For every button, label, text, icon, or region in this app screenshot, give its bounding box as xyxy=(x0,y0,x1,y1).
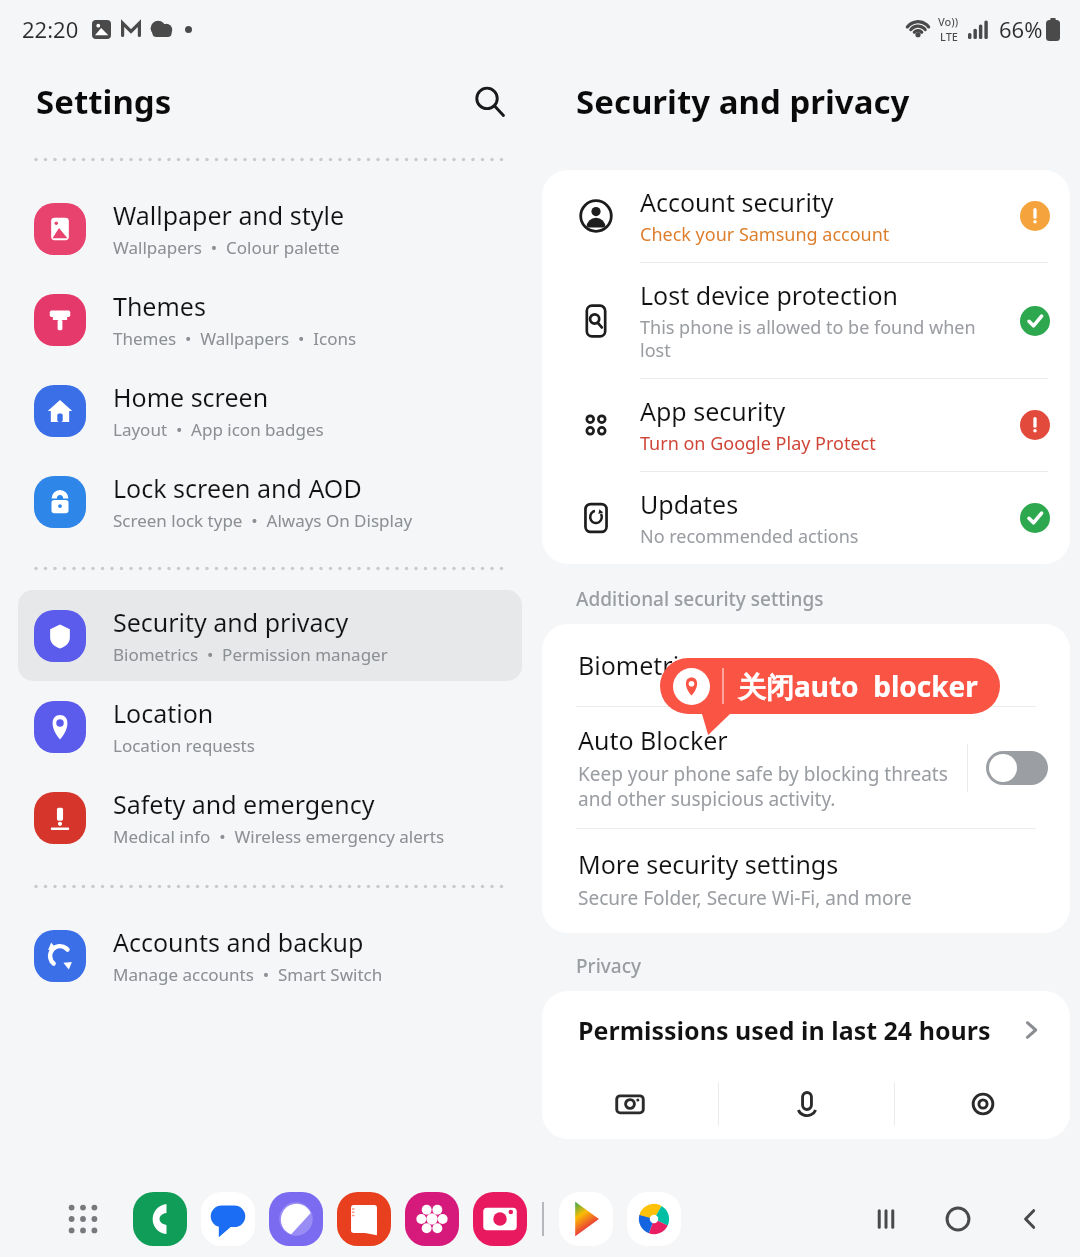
button[interactable]: Recents xyxy=(850,1183,922,1255)
button[interactable]: Themes xyxy=(18,274,522,365)
staticText: More security settings xyxy=(578,847,839,881)
staticText: Medical info • Wireless emergency alerts xyxy=(113,825,445,848)
button[interactable]: Lock screen and AOD xyxy=(18,456,522,547)
button[interactable]: Apps xyxy=(60,1196,106,1242)
staticText: Vo)) xyxy=(938,14,959,29)
staticText: Lost device protection xyxy=(640,278,898,312)
button[interactable]: Accounts and backup xyxy=(18,910,522,1001)
staticText: Biometrics • Permission manager xyxy=(113,643,388,666)
button[interactable]: Permissions used in last 24 hours xyxy=(542,991,1070,1069)
button[interactable]: Camera xyxy=(542,1069,718,1139)
staticText: Home screen xyxy=(113,380,269,414)
staticText: Security and privacy xyxy=(576,79,910,124)
button[interactable]: Auto Blocker toggle xyxy=(986,751,1048,785)
staticText: Layout • App icon badges xyxy=(113,418,324,441)
button[interactable]: Lost device protection xyxy=(542,263,1070,379)
staticText: Additional security settings xyxy=(576,586,824,612)
staticText: Turn on Google Play Protect xyxy=(640,431,876,456)
staticText: This phone is allowed to be found when l… xyxy=(640,315,1010,363)
button[interactable]: Internet xyxy=(269,1192,323,1246)
staticText: Updates xyxy=(640,487,739,521)
button[interactable]: Location xyxy=(18,681,522,772)
staticText: App security xyxy=(640,394,786,428)
button[interactable]: Auto Blocker xyxy=(542,707,1070,828)
staticText: 66% xyxy=(999,14,1043,44)
button[interactable]: Safety and emergency xyxy=(18,772,522,863)
button[interactable]: Microphone xyxy=(719,1069,894,1139)
button[interactable]: Back xyxy=(994,1183,1066,1255)
button[interactable]: Play Store xyxy=(559,1192,613,1246)
staticText: Privacy xyxy=(576,953,641,979)
button[interactable]: Phone xyxy=(133,1192,187,1246)
staticText: Themes • Wallpapers • Icons xyxy=(113,327,357,350)
staticText: 关闭auto blocker xyxy=(738,667,978,705)
staticText: Wallpapers • Colour palette xyxy=(113,236,340,259)
button[interactable]: Search xyxy=(464,76,514,126)
button[interactable]: Wallpaper and style xyxy=(18,183,522,274)
staticText: Accounts and backup xyxy=(113,925,364,959)
staticText: Security and privacy xyxy=(113,605,349,639)
button[interactable]: More security settings xyxy=(542,829,1070,933)
button[interactable]: Galaxy Store xyxy=(627,1192,681,1246)
staticText: Location requests xyxy=(113,734,255,757)
staticText: Auto Blocker xyxy=(578,723,728,757)
staticText: Wallpaper and style xyxy=(113,198,345,232)
staticText: Settings xyxy=(36,79,172,124)
button[interactable]: Gallery xyxy=(405,1192,459,1246)
button[interactable]: Home screen xyxy=(18,365,522,456)
button[interactable]: Location xyxy=(895,1069,1070,1139)
button[interactable]: Home xyxy=(922,1183,994,1255)
staticText: 22:20 xyxy=(22,14,79,44)
button[interactable]: Account security xyxy=(542,170,1070,263)
button[interactable]: Updates xyxy=(542,472,1070,564)
staticText: Secure Folder, Secure Wi-Fi, and more xyxy=(578,885,912,911)
button[interactable]: Biometrics xyxy=(542,624,1070,706)
staticText: Biometrics xyxy=(578,648,704,682)
staticText: Permissions used in last 24 hours xyxy=(578,1013,1018,1047)
button[interactable]: Messages xyxy=(201,1192,255,1246)
staticText: Themes xyxy=(113,289,206,323)
button[interactable]: 关闭auto blocker xyxy=(660,658,1000,714)
button[interactable]: Notes xyxy=(337,1192,391,1246)
staticText: Manage accounts • Smart Switch xyxy=(113,963,383,986)
button[interactable]: Camera xyxy=(473,1192,527,1246)
staticText: Screen lock type • Always On Display xyxy=(113,509,413,532)
staticText: Check your Samsung account xyxy=(640,222,890,247)
staticText: Keep your phone safe by blocking threats… xyxy=(578,761,953,812)
staticText: LTE xyxy=(940,29,958,44)
staticText: No recommended actions xyxy=(640,524,859,549)
button[interactable]: Security and privacy xyxy=(18,590,522,681)
staticText: Location xyxy=(113,696,214,730)
button[interactable]: App security xyxy=(542,379,1070,472)
staticText: Safety and emergency xyxy=(113,787,375,821)
staticText: Account security xyxy=(640,185,834,219)
staticText: Lock screen and AOD xyxy=(113,471,362,505)
